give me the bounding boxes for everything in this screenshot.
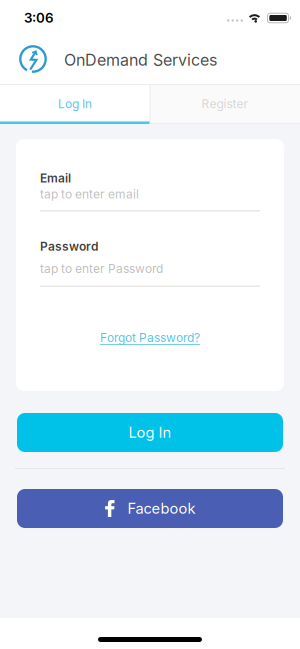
staticText: Password [40,239,98,253]
button[interactable]: Facebook [17,489,283,528]
staticText: tap to enter Password [40,261,163,276]
staticText: Forgot Password? [100,331,200,345]
staticText: Facebook [127,500,195,517]
button[interactable]: tap to enter email [40,187,260,211]
staticText: Email [40,171,71,185]
staticText: OnDemand Services [64,51,217,69]
staticText: Log In [128,424,171,441]
staticText: tap to enter email [40,187,139,201]
button[interactable]: Register [150,84,300,124]
button[interactable]: Log In [17,413,283,452]
staticText: 3:06 [24,10,54,26]
staticText: Register [201,97,248,111]
button[interactable]: Log In [0,84,150,124]
staticText: Log In [58,97,92,111]
button[interactable]: tap to enter Password [40,261,260,287]
button[interactable]: Forgot Password? [100,331,200,345]
